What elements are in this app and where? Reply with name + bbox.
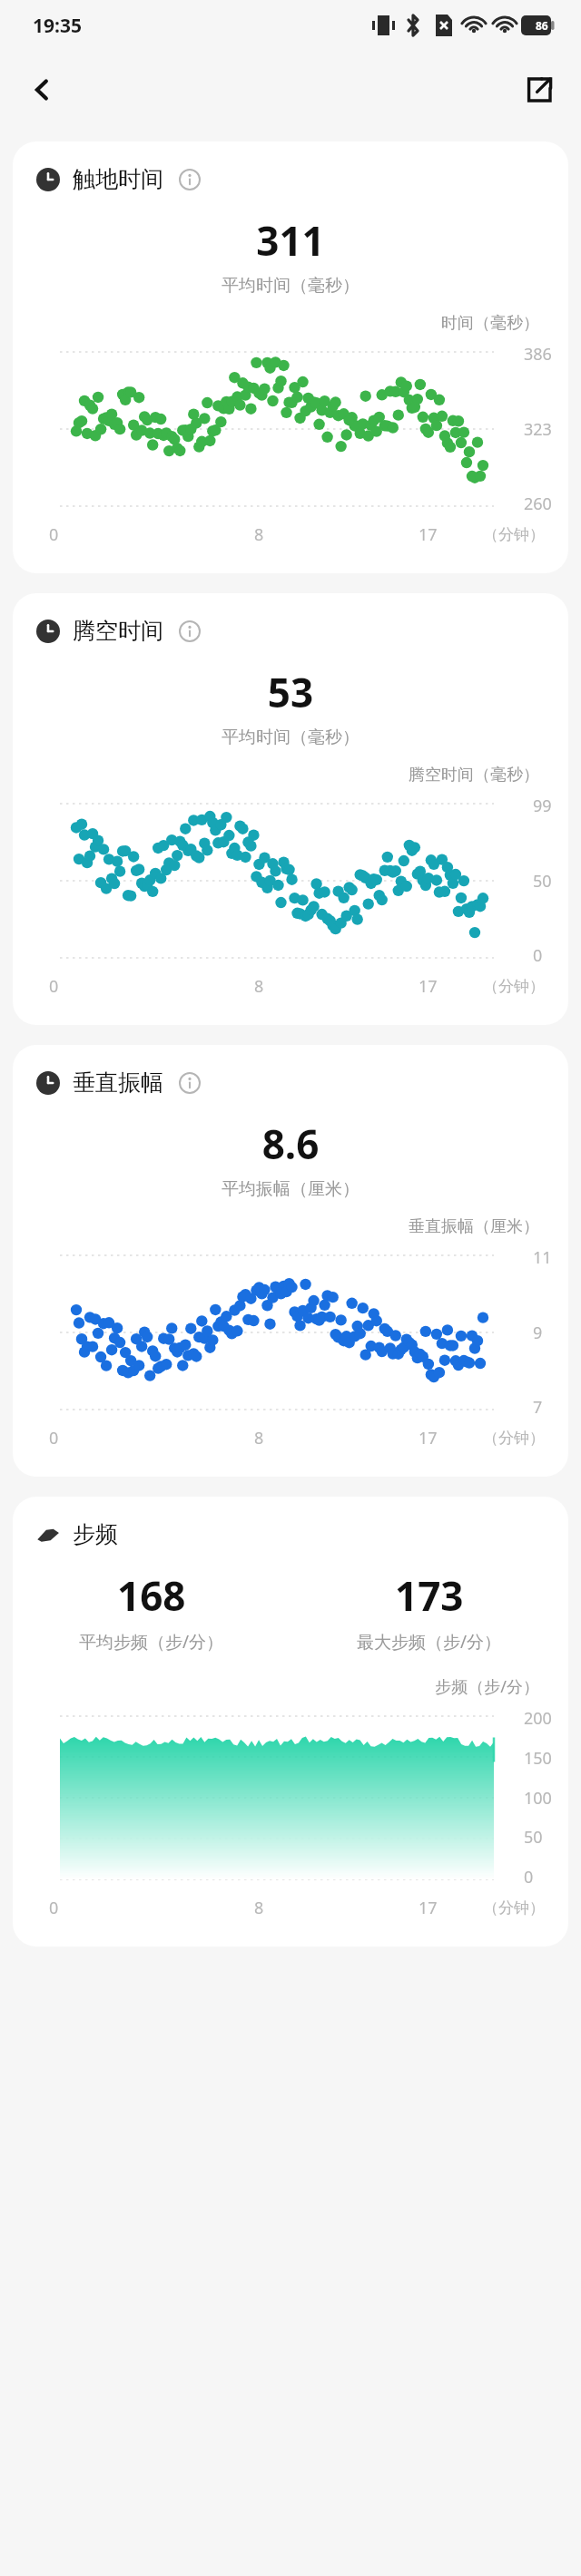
- staticText: 99: [533, 795, 552, 817]
- staticText: 平均时间（毫秒）: [13, 275, 568, 297]
- staticText: 173: [395, 1568, 464, 1623]
- staticText: 17: [419, 1427, 438, 1449]
- staticText: 0: [49, 1897, 59, 1919]
- staticText: 步频（步/分）: [13, 1675, 539, 1698]
- button[interactable]: 垂直振幅: [13, 1045, 568, 1477]
- button[interactable]: Info: [176, 618, 203, 645]
- staticText: 腾空时间（毫秒）: [13, 765, 539, 785]
- staticText: 50: [524, 1826, 543, 1849]
- staticText: 200: [524, 1707, 552, 1730]
- button[interactable]: Info: [176, 1069, 203, 1097]
- staticText: 86: [536, 18, 548, 33]
- staticText: 垂直振幅: [73, 1068, 163, 1097]
- staticText: 19:35: [33, 13, 82, 39]
- staticText: 0: [533, 944, 543, 967]
- staticText: 260: [524, 493, 552, 515]
- button[interactable]: 触地时间: [13, 141, 568, 573]
- staticText: 386: [524, 343, 552, 366]
- button[interactable]: Back: [16, 64, 67, 115]
- staticText: （分钟）: [483, 977, 545, 996]
- staticText: 触地时间: [73, 165, 163, 193]
- staticText: （分钟）: [483, 1898, 545, 1917]
- button[interactable]: Share: [514, 64, 565, 115]
- staticText: 0: [49, 1427, 59, 1449]
- staticText: 时间（毫秒）: [13, 313, 539, 334]
- staticText: 150: [524, 1747, 552, 1770]
- staticText: 7: [533, 1396, 543, 1419]
- staticText: 0: [524, 1866, 534, 1888]
- staticText: 53: [13, 665, 568, 719]
- staticText: 0: [49, 975, 59, 998]
- staticText: 步频: [73, 1520, 118, 1548]
- staticText: 11: [533, 1246, 552, 1269]
- staticText: 17: [419, 975, 438, 998]
- staticText: 100: [524, 1787, 552, 1810]
- button[interactable]: Info: [176, 166, 203, 193]
- staticText: 垂直振幅（厘米）: [13, 1216, 539, 1237]
- staticText: 17: [419, 1897, 438, 1919]
- staticText: 9: [533, 1322, 543, 1344]
- staticText: 腾空时间: [73, 617, 163, 645]
- staticText: 平均步频（步/分）: [79, 1630, 224, 1654]
- button[interactable]: 步频: [13, 1497, 568, 1947]
- staticText: 8: [254, 975, 264, 998]
- staticText: 8: [254, 1427, 264, 1449]
- staticText: 323: [524, 418, 552, 441]
- staticText: （分钟）: [483, 525, 545, 544]
- staticText: 平均振幅（厘米）: [13, 1178, 568, 1200]
- staticText: 50: [533, 870, 552, 893]
- staticText: 8: [254, 523, 264, 546]
- staticText: 最大步频（步/分）: [357, 1630, 502, 1654]
- staticText: 168: [117, 1568, 186, 1623]
- staticText: （分钟）: [483, 1429, 545, 1448]
- staticText: 0: [49, 523, 59, 546]
- staticText: 17: [419, 523, 438, 546]
- staticText: 平均时间（毫秒）: [13, 727, 568, 748]
- staticText: 8: [254, 1897, 264, 1919]
- staticText: 311: [13, 213, 568, 268]
- button[interactable]: 腾空时间: [13, 593, 568, 1025]
- staticText: 8.6: [13, 1117, 568, 1171]
